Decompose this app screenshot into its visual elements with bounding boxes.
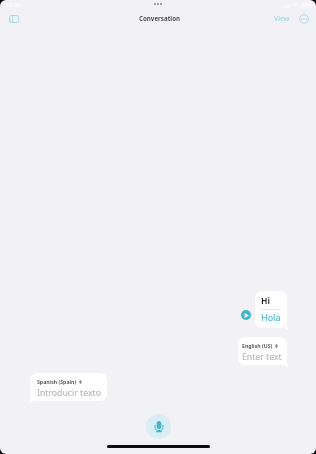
staticText: Enter text	[242, 351, 282, 363]
staticText: Hola	[261, 311, 281, 323]
staticText: English (US)	[242, 342, 273, 349]
staticText: Introducir texto	[37, 387, 101, 399]
button[interactable]: View	[274, 14, 290, 24]
button[interactable]: Spanish (Spain)	[30, 373, 107, 401]
button[interactable]: Microphone	[146, 414, 171, 439]
button[interactable]: Toggle sidebar	[4, 11, 23, 26]
staticText: Hi	[261, 295, 271, 307]
staticText: View	[274, 14, 290, 24]
button[interactable]: Hi	[255, 291, 287, 328]
button[interactable]: Play translation	[241, 310, 251, 320]
staticText: Conversation	[139, 14, 181, 22]
button[interactable]: English (US)	[238, 337, 287, 365]
button[interactable]: More options	[296, 11, 311, 26]
staticText: Spanish (Spain)	[37, 378, 77, 385]
